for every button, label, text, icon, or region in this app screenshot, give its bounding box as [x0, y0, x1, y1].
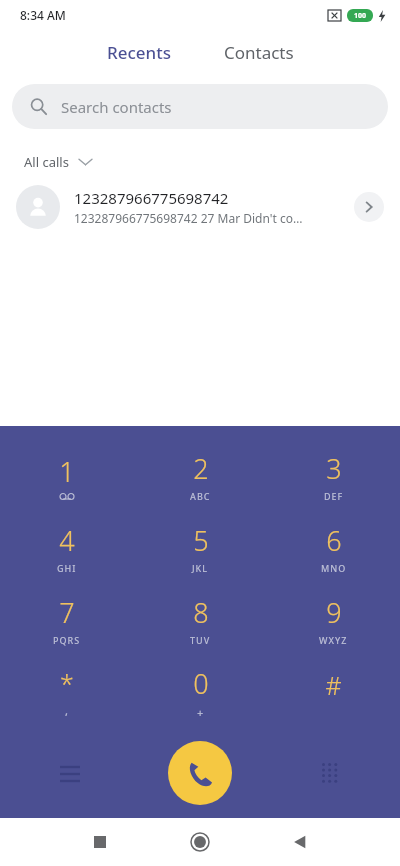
staticText: 0 — [193, 665, 209, 702]
button[interactable]: Contacts — [210, 35, 308, 70]
button[interactable]: 3 — [267, 440, 400, 512]
button[interactable]: Recent apps — [70, 818, 130, 866]
button[interactable]: 123287966775698742 — [0, 177, 400, 237]
staticText: 9 — [326, 594, 342, 631]
staticText: 1 — [59, 453, 75, 490]
staticText: ABC — [190, 490, 211, 502]
button[interactable]: Call details — [354, 192, 384, 222]
button[interactable]: Call — [168, 741, 232, 805]
button[interactable]: Recents — [93, 35, 186, 70]
staticText: WXYZ — [319, 634, 348, 646]
button[interactable]: Search contacts — [12, 84, 388, 129]
staticText: 100 — [354, 11, 367, 21]
staticText: # — [325, 668, 342, 702]
staticText: + — [197, 705, 205, 720]
staticText: 8 — [193, 594, 209, 631]
staticText: PQRS — [53, 634, 81, 646]
button[interactable]: 0 — [134, 656, 267, 728]
staticText: DEF — [324, 490, 344, 502]
staticText: 2 — [193, 450, 209, 487]
button[interactable]: 2 — [134, 440, 267, 512]
staticText: 3 — [326, 450, 342, 487]
staticText: , — [65, 703, 70, 718]
staticText: 123287966775698742 — [74, 188, 229, 208]
staticText: * — [60, 666, 74, 700]
staticText: 123287966775698742 27 Mar Didn't co… — [74, 210, 303, 226]
button[interactable]: All calls — [16, 147, 100, 177]
staticText: JKL — [192, 562, 209, 574]
button[interactable]: * — [0, 656, 134, 728]
staticText: Recents — [107, 41, 172, 64]
button[interactable]: More options — [50, 753, 90, 793]
button[interactable]: 8 — [134, 584, 267, 656]
button[interactable]: 6 — [267, 512, 400, 584]
button[interactable]: 4 — [0, 512, 134, 584]
staticText: GHI — [57, 562, 77, 574]
button[interactable]: Keypad — [310, 753, 350, 793]
staticText: All calls — [24, 153, 69, 171]
button[interactable]: Back — [270, 818, 330, 866]
staticText: 4 — [59, 522, 75, 559]
button[interactable]: 7 — [0, 584, 134, 656]
staticText: TUV — [190, 634, 211, 646]
staticText: MNO — [321, 562, 347, 574]
staticText: 8:34 AM — [20, 7, 66, 23]
button[interactable]: 9 — [267, 584, 400, 656]
staticText: Contacts — [224, 41, 294, 64]
staticText: 5 — [193, 522, 209, 559]
staticText: Search contacts — [61, 97, 172, 117]
button[interactable]: Home — [170, 818, 230, 866]
button[interactable]: # — [267, 656, 400, 728]
staticText: 6 — [326, 522, 342, 559]
staticText: 7 — [59, 594, 75, 631]
button[interactable]: 1 — [0, 440, 134, 512]
button[interactable]: 5 — [134, 512, 267, 584]
